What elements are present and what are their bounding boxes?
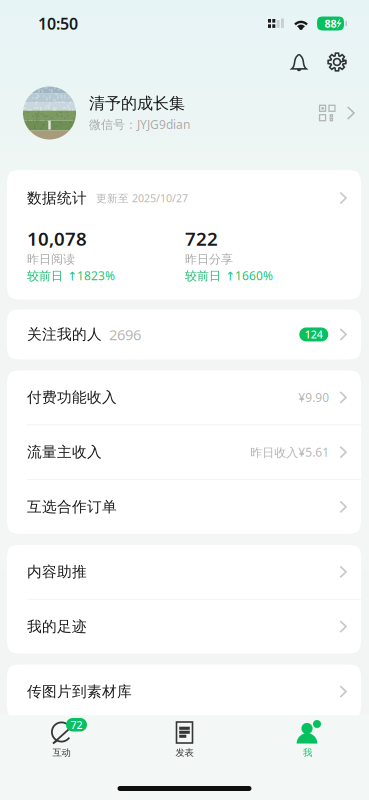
staticText: 我的足迹 bbox=[27, 618, 87, 636]
button[interactable]: 我的足迹 bbox=[7, 600, 361, 654]
button[interactable]: 关注我的人 bbox=[7, 309, 361, 359]
button[interactable]: 传图片到素材库 bbox=[7, 665, 361, 719]
staticText: 124 bbox=[305, 327, 323, 342]
button[interactable]: 发表 bbox=[123, 721, 246, 758]
button[interactable]: 付费功能收入 bbox=[7, 370, 361, 424]
staticText: 互选合作订单 bbox=[27, 498, 117, 516]
staticText: 10,078 bbox=[27, 226, 87, 251]
staticText: 互动 bbox=[52, 747, 70, 758]
staticText: 付费功能收入 bbox=[27, 388, 117, 406]
button[interactable]: 内容助推 bbox=[7, 545, 361, 599]
staticText: 2696 bbox=[109, 325, 141, 344]
staticText: 发表 bbox=[175, 747, 193, 758]
staticText: 722 bbox=[185, 226, 218, 251]
staticText: 我 bbox=[303, 747, 312, 758]
staticText: 流量主收入 bbox=[27, 443, 102, 461]
staticText: 清予的成长集 bbox=[89, 94, 185, 113]
button[interactable]: Notifications bbox=[280, 47, 318, 77]
staticText: 关注我的人 bbox=[27, 325, 102, 343]
button[interactable]: 流量主收入 bbox=[7, 425, 361, 479]
staticText: 72 bbox=[70, 718, 82, 732]
button[interactable]: 互选合作订单 bbox=[7, 480, 361, 534]
staticText: 微信号：JYJG9dian bbox=[89, 116, 190, 132]
button[interactable]: Settings bbox=[318, 47, 356, 77]
staticText: ¥9.90 bbox=[298, 389, 329, 405]
staticText: 较前日 ↑1823% bbox=[27, 267, 115, 283]
staticText: 昨日收入¥5.61 bbox=[250, 444, 329, 460]
staticText: 更新至 2025/10/27 bbox=[96, 191, 188, 205]
staticText: 传图片到素材库 bbox=[27, 683, 132, 701]
staticText: 数据统计 bbox=[27, 189, 87, 207]
button[interactable]: 72 bbox=[0, 721, 123, 758]
staticText: 内容助推 bbox=[27, 563, 87, 581]
staticText: 10:50 bbox=[38, 13, 78, 34]
button[interactable]: 我 bbox=[246, 721, 369, 758]
staticText: 昨日分享 bbox=[185, 252, 233, 266]
staticText: 88 bbox=[324, 16, 336, 31]
button[interactable]: 清予的成长集 bbox=[0, 82, 369, 144]
staticText: 昨日阅读 bbox=[27, 252, 75, 266]
staticText: 较前日 ↑1660% bbox=[185, 267, 273, 283]
